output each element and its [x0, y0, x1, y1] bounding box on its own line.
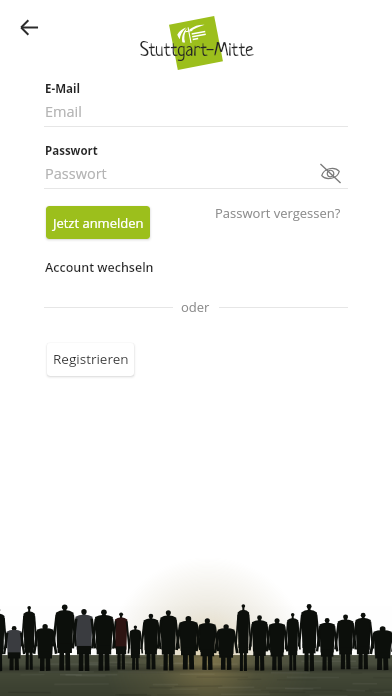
staticText: E-Mail: [45, 81, 80, 97]
staticText: Jetzt anmelden: [53, 214, 144, 232]
button[interactable]: Show password: [317, 160, 343, 186]
button[interactable]: Passwort vergessen?: [209, 195, 347, 231]
button[interactable]: Back: [15, 13, 43, 41]
staticText: Passwort: [45, 143, 98, 159]
staticText: Passwort: [45, 164, 107, 184]
button[interactable]: Registrieren: [47, 343, 134, 376]
staticText: Stuttgart-Mitte: [140, 41, 254, 62]
staticText: Passwort vergessen?: [215, 204, 341, 222]
staticText: Registrieren: [53, 350, 129, 368]
button[interactable]: Account wechseln: [45, 258, 154, 277]
staticText: Account wechseln: [45, 259, 154, 276]
button[interactable]: Jetzt anmelden: [46, 206, 150, 239]
staticText: Email: [45, 102, 82, 122]
staticText: oder: [181, 298, 210, 316]
